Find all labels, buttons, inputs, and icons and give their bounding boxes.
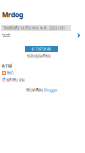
staticText: โพสต์เมื่อ 14 มีนาคม พ.ศ. 2553 เวลา bbox=[3, 25, 65, 31]
staticText: ป้ายกำกับ เกม bbox=[2, 77, 25, 83]
staticText: Mrdog bbox=[2, 10, 23, 19]
staticText: Blogger bbox=[44, 87, 58, 93]
staticText: ขับเคลื่อน bbox=[26, 87, 43, 93]
button[interactable]: Blogger bbox=[44, 87, 58, 93]
button[interactable]: ไม่มี bbox=[0, 32, 85, 39]
staticText: ดาวน์โหลด bbox=[31, 46, 51, 52]
staticText: ลิงก์ bbox=[7, 70, 13, 76]
staticText: ดาวน์ bbox=[2, 63, 12, 69]
staticText: ขอบคุณที่ชม bbox=[27, 53, 51, 59]
button[interactable]: ดาวน์โหลด bbox=[25, 46, 58, 52]
staticText: ไม่มี bbox=[2, 32, 10, 39]
button[interactable]: ลิงก์ bbox=[0, 71, 13, 75]
